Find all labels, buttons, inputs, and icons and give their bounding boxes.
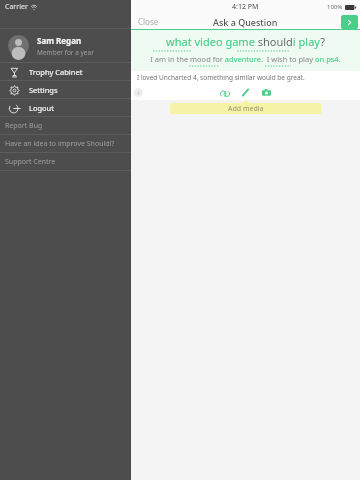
button[interactable]: Settings: [0, 81, 131, 98]
staticText: I loved Uncharted 4, something similar w…: [137, 73, 305, 82]
staticText: what video game shouldi play?: [166, 34, 325, 49]
staticText: Support Centre: [5, 157, 56, 167]
button[interactable]: Trophy Cabinet: [0, 63, 131, 80]
staticText: Logout: [29, 103, 54, 113]
staticText: Ask a Question: [213, 16, 278, 28]
staticText: Settings: [29, 85, 58, 95]
button[interactable]: Draw: [239, 86, 252, 99]
staticText: Sam Regan: [37, 35, 82, 46]
button[interactable]: Next: [341, 15, 358, 29]
button[interactable]: Info: [134, 88, 143, 97]
staticText: Add media: [228, 104, 264, 114]
staticText: Report Bug: [5, 121, 43, 131]
staticText: 100%: [327, 3, 343, 11]
staticText: Member for a year: [37, 48, 94, 57]
staticText: I am in the mood for adventure. I wish t…: [150, 54, 341, 64]
button[interactable]: I loved Uncharted 4, something similar w…: [131, 71, 360, 84]
button[interactable]: Have an idea to improve Shouldi?: [0, 135, 131, 152]
button[interactable]: Sam Regan: [0, 29, 131, 62]
staticText: Trophy Cabinet: [29, 67, 83, 77]
button[interactable]: Support Centre: [0, 153, 131, 170]
button[interactable]: Add photo: [260, 86, 273, 99]
staticText: 4:12 PM: [232, 2, 259, 12]
staticText: Close: [138, 16, 159, 27]
staticText: i: [138, 89, 140, 97]
button[interactable]: Close: [131, 14, 165, 29]
button[interactable]: Report Bug: [0, 117, 131, 134]
button[interactable]: Attach link: [218, 86, 231, 99]
staticText: Carrier: [5, 2, 28, 12]
button[interactable]: Add media: [170, 103, 321, 114]
staticText: Have an idea to improve Shouldi?: [5, 139, 115, 149]
button[interactable]: Logout: [0, 99, 131, 116]
